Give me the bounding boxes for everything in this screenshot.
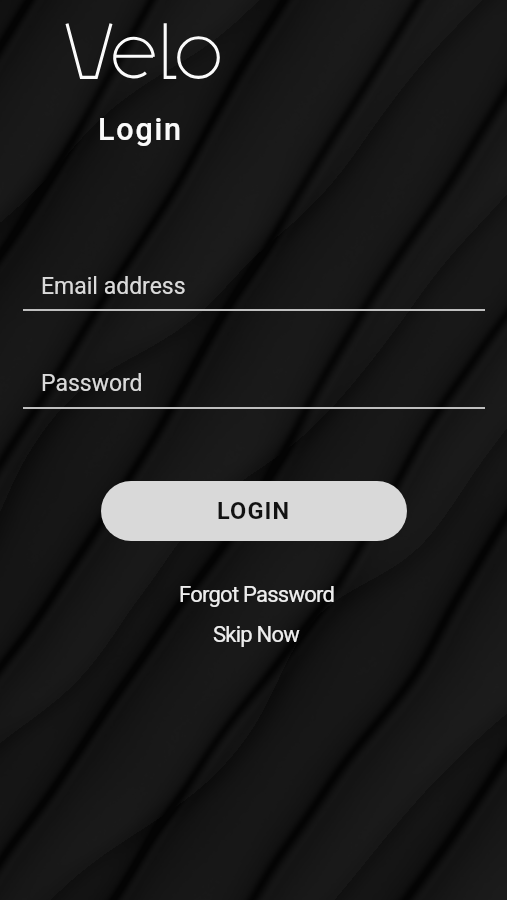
button[interactable]: Email address	[23, 273, 484, 312]
staticText: Password	[41, 370, 143, 397]
staticText: Skip Now	[213, 622, 300, 648]
button[interactable]: LOGIN	[101, 481, 407, 541]
button[interactable]: Skip Now	[203, 620, 310, 650]
staticText: Email address	[41, 273, 186, 300]
staticText: Forgot Password	[179, 582, 335, 608]
button[interactable]: Forgot Password	[169, 580, 345, 610]
button[interactable]: Login	[98, 112, 183, 148]
staticText: LOGIN	[217, 497, 291, 525]
staticText: Login	[98, 112, 183, 148]
button[interactable]: Password	[23, 370, 484, 409]
